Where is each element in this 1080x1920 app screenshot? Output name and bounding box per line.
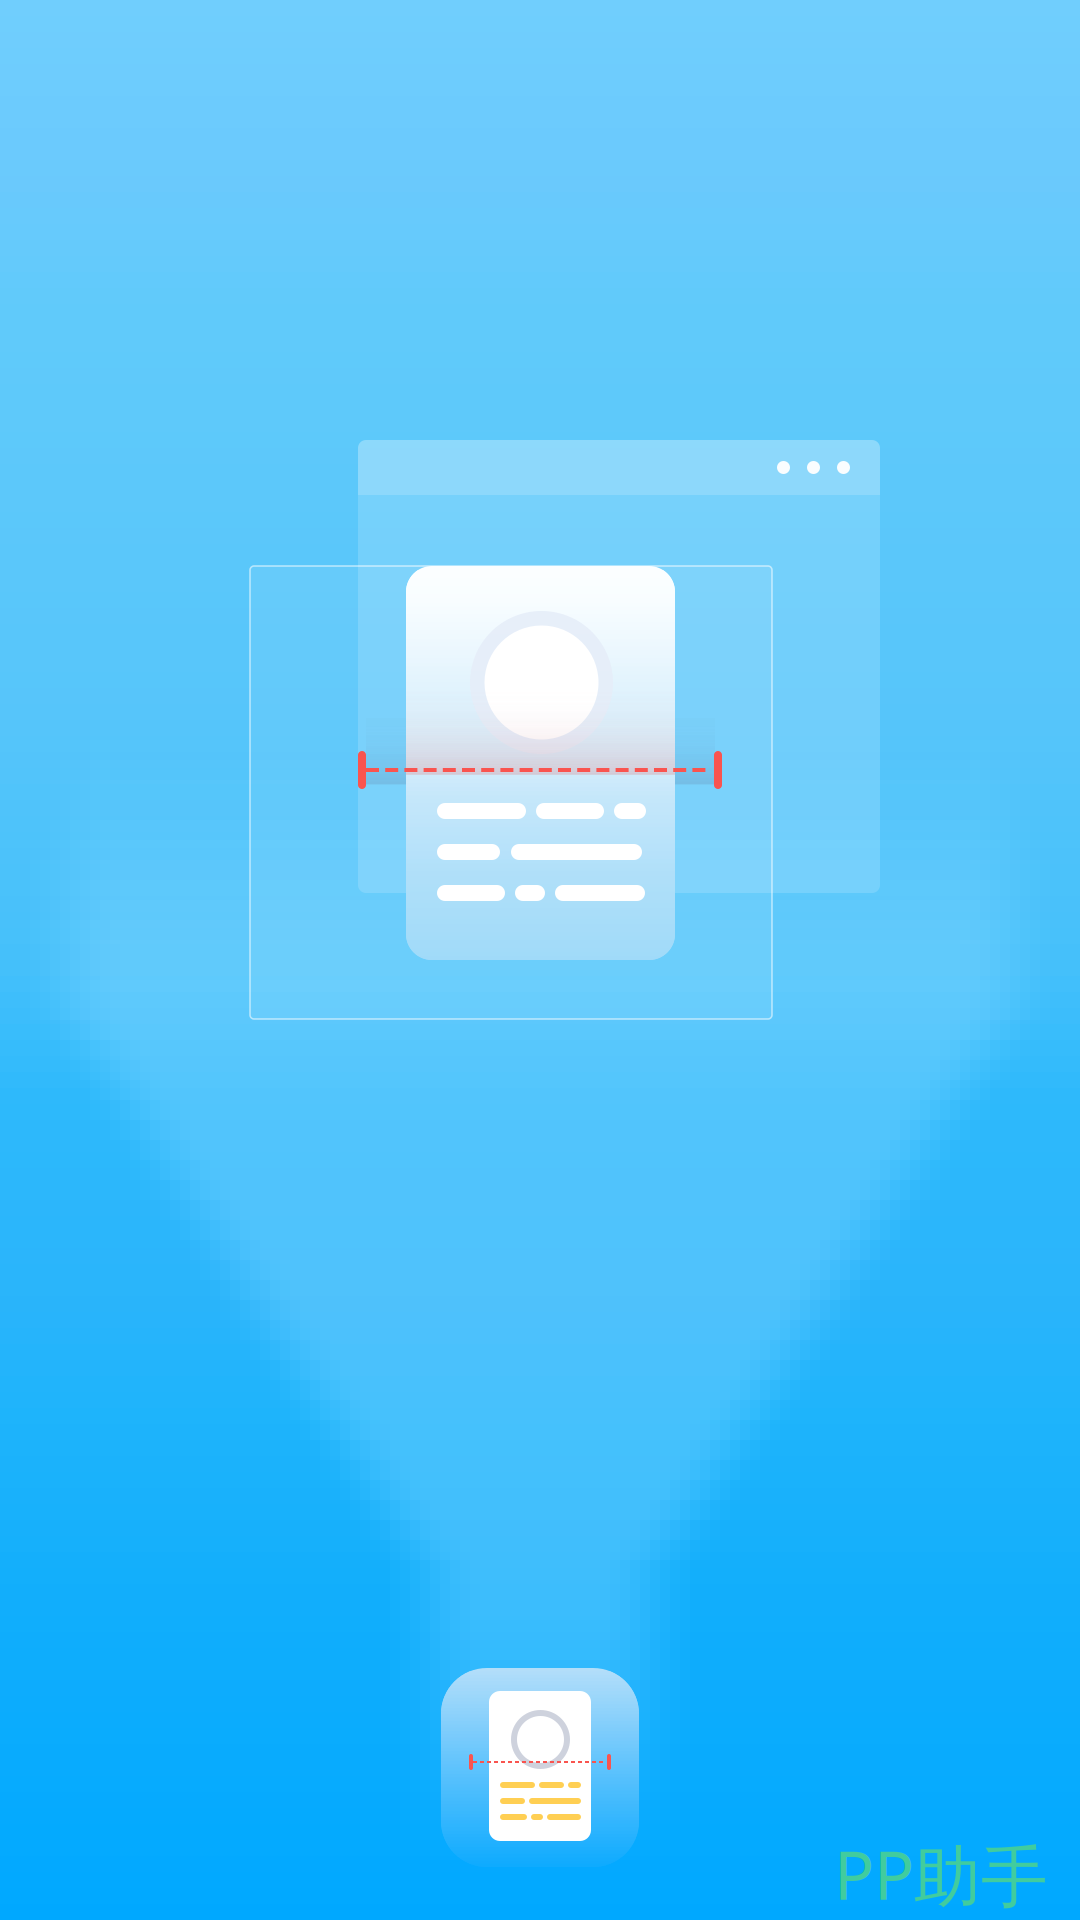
staticText: PP助手 bbox=[834, 1830, 1048, 1918]
button[interactable]: App icon bbox=[441, 1668, 639, 1867]
